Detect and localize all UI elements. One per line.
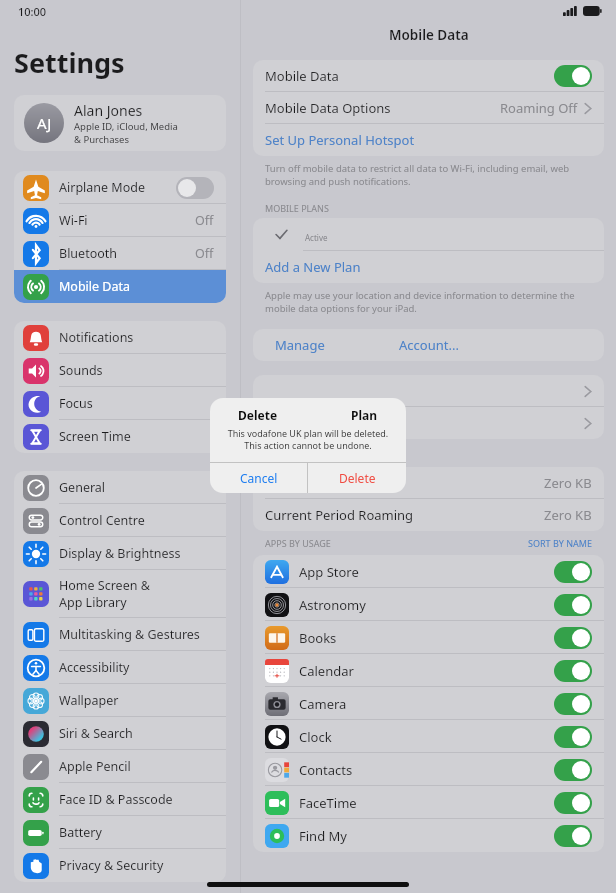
button[interactable]: Sounds (14, 354, 226, 387)
button[interactable]: Active (253, 218, 604, 251)
button[interactable]: Set Up Personal Hotspot (253, 124, 604, 156)
button[interactable]: Toggle (554, 561, 592, 583)
button[interactable]: Accessibility (14, 651, 226, 684)
button[interactable]: SORT BY NAME (528, 537, 592, 549)
button[interactable]: Privacy & Security (14, 849, 226, 882)
staticText: Manage (275, 336, 325, 354)
staticText: APPS BY USAGE (265, 537, 331, 549)
button[interactable] (253, 375, 604, 407)
button[interactable]: App Store (253, 555, 604, 588)
staticText: Home Screen & (59, 577, 150, 594)
staticText: Find My (299, 827, 347, 845)
button[interactable]: Manage (253, 329, 399, 361)
button[interactable]: Face ID & Passcode (14, 783, 226, 816)
staticText: Apple Pencil (59, 758, 131, 775)
staticText: Add a New Plan (265, 258, 361, 276)
button[interactable]: Wi-Fi (14, 204, 226, 237)
staticText: & Purchases (74, 133, 129, 146)
button[interactable]: Toggle (554, 759, 592, 781)
staticText: Astronomy (299, 596, 366, 614)
button[interactable]: FaceTime (253, 786, 604, 819)
button[interactable]: Toggle (554, 792, 592, 814)
staticText: Screen Time (59, 428, 131, 445)
button[interactable]: Contacts (253, 753, 604, 786)
staticText: Account... (399, 336, 459, 354)
staticText: Roaming Off (500, 99, 578, 117)
button[interactable]: Multitasking & Gestures (14, 618, 226, 651)
staticText: Mobile Data Options (265, 99, 391, 117)
staticText: Alan Jones (74, 101, 143, 120)
staticText: Apple ID, iCloud, Media (74, 120, 178, 133)
staticText: Off (195, 212, 214, 229)
button[interactable]: Display & Brightness (14, 537, 226, 570)
button[interactable]: Apple Pencil (14, 750, 226, 783)
staticText: Mobile Data (389, 26, 469, 44)
button[interactable]: Account... (399, 329, 604, 361)
button[interactable]: Astronomy (253, 588, 604, 621)
button[interactable]: AJ (14, 95, 226, 151)
staticText: Active (305, 232, 328, 243)
button[interactable] (253, 407, 604, 439)
button[interactable]: Toggle (554, 726, 592, 748)
button[interactable]: Focus (14, 387, 226, 420)
button[interactable]: Control Centre (14, 504, 226, 537)
staticText: Current Period (265, 474, 355, 492)
staticText: MOBILE DATA (265, 451, 323, 463)
button[interactable]: Mobile Data (14, 270, 226, 303)
button[interactable]: Notifications (14, 321, 226, 354)
staticText: This action cannot be undone. (210, 439, 406, 451)
staticText: Multitasking & Gestures (59, 626, 200, 643)
staticText: Clock (299, 728, 332, 746)
staticText: Focus (59, 395, 93, 412)
button[interactable]: Wallpaper (14, 684, 226, 717)
button[interactable]: Battery (14, 816, 226, 849)
button[interactable]: Current Period (253, 467, 604, 499)
button[interactable]: Books (253, 621, 604, 654)
button[interactable]: Toggle (554, 65, 592, 87)
button[interactable]: Add a New Plan (253, 251, 604, 283)
staticText: Display & Brightness (59, 545, 181, 562)
staticText: Turn off mobile data to restrict all dat… (265, 162, 570, 188)
staticText: Set Up Personal Hotspot (265, 131, 415, 149)
staticText: Calendar (299, 662, 354, 680)
staticText: General (59, 479, 106, 496)
button[interactable]: Toggle (554, 825, 592, 847)
staticText: FaceTime (299, 794, 357, 812)
button[interactable]: Delete (308, 463, 406, 493)
staticText: Zero KB (544, 474, 592, 492)
button[interactable]: Toggle (554, 627, 592, 649)
button[interactable]: Calendar (253, 654, 604, 687)
staticText: Camera (299, 695, 347, 713)
staticText: Bluetooth (59, 245, 118, 262)
button[interactable]: Current Period Roaming (253, 499, 604, 531)
button[interactable]: Mobile Data (253, 60, 604, 92)
button[interactable]: Camera (253, 687, 604, 720)
staticText: Control Centre (59, 512, 145, 529)
button[interactable]: General (14, 471, 226, 504)
staticText: Airplane Mode (59, 179, 145, 196)
button[interactable]: Mobile Data Options (253, 92, 604, 124)
staticText: AJ (37, 113, 52, 133)
staticText: Mobile Data (59, 278, 131, 295)
button[interactable]: Toggle (554, 660, 592, 682)
staticText: Accessibility (59, 659, 130, 676)
button[interactable]: Toggle (554, 594, 592, 616)
staticText: Mobile Data (265, 67, 339, 85)
staticText: MOBILE PLANS (265, 202, 329, 214)
staticText: App Library (59, 594, 127, 611)
staticText: Delete (238, 407, 278, 423)
staticText: Wi-Fi (59, 212, 88, 229)
button[interactable]: Cancel (210, 463, 307, 493)
staticText: Settings (14, 44, 125, 81)
staticText: Plan (351, 407, 378, 423)
button[interactable]: Airplane Mode (14, 171, 226, 204)
button[interactable]: Find My (253, 819, 604, 852)
button[interactable]: Toggle (554, 693, 592, 715)
staticText: Contacts (299, 761, 353, 779)
button[interactable]: Home Screen & (14, 570, 226, 618)
button[interactable]: Siri & Search (14, 717, 226, 750)
button[interactable]: Bluetooth (14, 237, 226, 270)
button[interactable]: Clock (253, 720, 604, 753)
button[interactable]: Screen Time (14, 420, 226, 453)
staticText: Apple may use your location and device i… (265, 289, 575, 315)
